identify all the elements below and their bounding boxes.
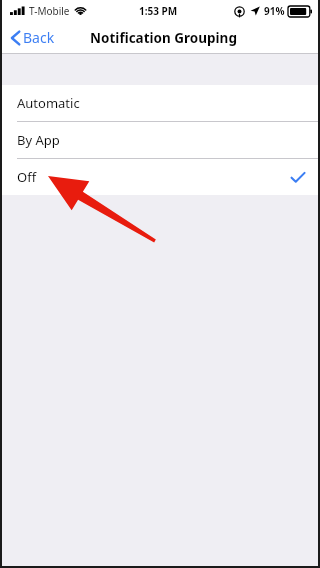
staticText: Back bbox=[23, 28, 55, 47]
button[interactable]: By App bbox=[2, 122, 318, 158]
staticText: Automatic bbox=[17, 94, 80, 112]
staticText: T-Mobile bbox=[29, 4, 70, 18]
button[interactable]: Off bbox=[2, 159, 318, 195]
button[interactable]: Back bbox=[2, 24, 65, 51]
staticText: Off bbox=[17, 168, 37, 186]
staticText: 1:53 PM bbox=[139, 4, 178, 18]
staticText: Notification Grouping bbox=[90, 29, 237, 47]
staticText: By App bbox=[17, 131, 60, 149]
button[interactable]: Automatic bbox=[2, 85, 318, 121]
staticText: 91% bbox=[264, 4, 285, 18]
